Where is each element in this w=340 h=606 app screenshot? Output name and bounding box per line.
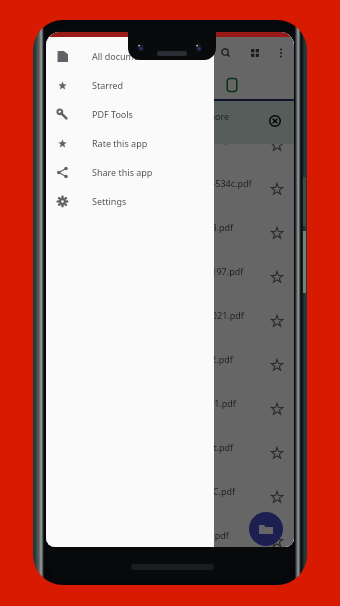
staticText: Scanned-Document-IMG-0007197.pdf — [84, 265, 244, 277]
button[interactable]: More options — [273, 45, 289, 61]
button[interactable]: Scanned-Document-IMG-0007197.pdf — [46, 255, 294, 299]
staticText: Try new PDF tools: merge, split and more — [56, 110, 230, 122]
staticText: Invoice-Statement-Final-Copy-B.pdf — [84, 221, 234, 233]
staticText: Share this app — [92, 166, 153, 178]
staticText: Meeting-Notes-Draft-Copy-rev2.pdf — [84, 353, 233, 365]
staticText: 12 May 2024 · 240 KB — [84, 147, 158, 157]
button[interactable]: Annual-Report-Summary-2024-534c.pdf — [46, 167, 294, 211]
button[interactable]: Device tab — [219, 72, 245, 98]
staticText: Settings — [92, 195, 127, 207]
staticText: Payment-Receipt-Number-000021.pdf — [84, 309, 244, 321]
staticText: Starred — [92, 79, 124, 91]
staticText: Insurance-Policy-Document-Set.pdf — [84, 441, 234, 453]
staticText: 12 May 2024 · 240 KB — [84, 191, 158, 201]
staticText: Project-Plan-Overview-Final-34C.pdf — [84, 485, 236, 497]
staticText: Letter-Of-Recommendation-Sc.pdf — [84, 529, 229, 541]
button[interactable]: New folder — [249, 512, 283, 546]
button[interactable]: Project-Plan-Overview-Final-34C.pdf — [46, 475, 294, 519]
button[interactable]: Search — [218, 45, 234, 61]
staticText: Reading-Material-Chapter-00891.pdf — [84, 133, 239, 145]
button[interactable]: All documents — [46, 41, 214, 70]
staticText: Annual-Report-Summary-2024-534c.pdf — [84, 177, 252, 189]
button[interactable]: Dismiss — [269, 115, 281, 127]
button[interactable]: Reading-Material-Chapter-00891.pdf — [46, 123, 294, 167]
button[interactable]: Insurance-Policy-Document-Set.pdf — [46, 431, 294, 475]
button[interactable]: Letter-Of-Recommendation-Sc.pdf — [46, 519, 294, 547]
button[interactable]: PDF Tools — [46, 99, 214, 128]
button[interactable]: Settings — [46, 186, 214, 215]
button[interactable]: Share this app — [46, 157, 214, 186]
staticText: Travel-Itinerary-Plan-2024-05-21.pdf — [84, 397, 236, 409]
button[interactable]: Travel-Itinerary-Plan-2024-05-21.pdf — [46, 387, 294, 431]
staticText: Rate this app — [92, 137, 148, 149]
staticText: PDF Tools — [92, 108, 133, 120]
button[interactable]: Grid view — [247, 45, 263, 61]
staticText: All documents — [92, 50, 153, 62]
button[interactable]: Payment-Receipt-Number-000021.pdf — [46, 299, 294, 343]
button[interactable]: Rate this app — [46, 128, 214, 157]
button[interactable]: Invoice-Statement-Final-Copy-B.pdf — [46, 211, 294, 255]
button[interactable]: Meeting-Notes-Draft-Copy-rev2.pdf — [46, 343, 294, 387]
button[interactable]: Starred — [46, 70, 214, 99]
